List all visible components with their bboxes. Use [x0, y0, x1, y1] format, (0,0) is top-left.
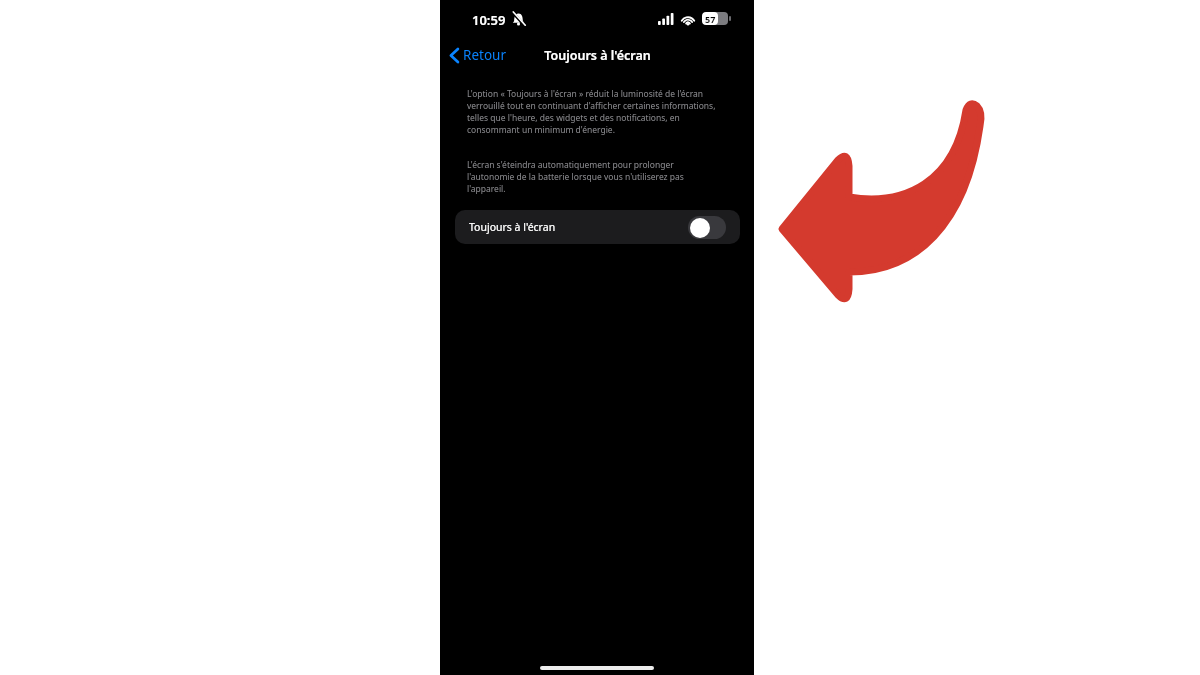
staticText: Retour: [463, 46, 506, 64]
button[interactable]: Toujours à l'écran: [455, 210, 740, 244]
staticText: 10:59: [472, 11, 506, 28]
staticText: 57: [705, 13, 716, 25]
staticText: L'écran s'éteindra automatiquement pour …: [467, 159, 717, 195]
button[interactable]: Toujours à l'écran, désactivé: [688, 216, 726, 239]
staticText: L'option « Toujours à l'écran » réduit l…: [467, 88, 717, 136]
staticText: Toujours à l'écran: [469, 220, 556, 234]
staticText: Toujours à l'écran: [544, 47, 651, 64]
other: Flèche rouge pointant vers le réglage: [0, 0, 1200, 675]
button[interactable]: Retour: [446, 43, 510, 67]
